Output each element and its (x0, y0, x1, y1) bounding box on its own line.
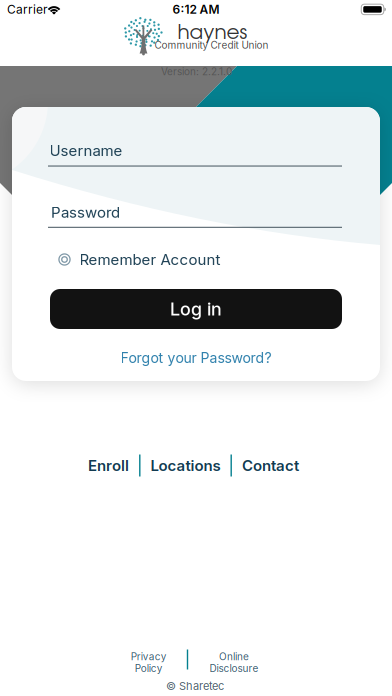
button[interactable]: Log in (50, 289, 342, 329)
staticText: Policy (135, 662, 163, 674)
staticText: Enroll (88, 457, 129, 474)
staticText: Password (51, 203, 120, 221)
staticText: Online (219, 651, 249, 662)
staticText: 6:12 AM (172, 2, 219, 17)
staticText: Forgot your Password? (120, 350, 271, 366)
staticText: Contact (242, 457, 299, 474)
button[interactable]: Privacy (131, 651, 167, 674)
staticText: Community (154, 39, 208, 51)
staticText: Privacy (131, 651, 167, 662)
button[interactable]: Forgot your Password? (120, 350, 271, 366)
button[interactable]: Locations (150, 457, 220, 474)
staticText: © Sharetec (166, 679, 224, 692)
staticText: Username (49, 142, 122, 159)
button[interactable]: Contact (242, 457, 299, 474)
staticText: Credit Union (210, 39, 268, 51)
staticText: Carrier (7, 2, 48, 17)
staticText: Remember Account (79, 251, 220, 268)
staticText: Locations (150, 457, 220, 474)
button[interactable]: Online (209, 651, 258, 674)
staticText: Version: 2.2.1.0 (161, 66, 232, 77)
staticText: Log in (170, 298, 222, 320)
button[interactable]: Enroll (88, 457, 129, 474)
button[interactable]: Remember Account (57, 251, 220, 268)
staticText: haynes (177, 24, 247, 43)
staticText: Disclosure (209, 662, 258, 674)
